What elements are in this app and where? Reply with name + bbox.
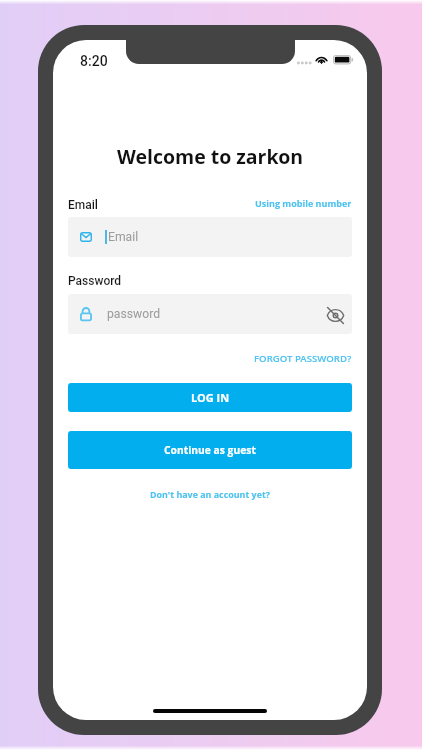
staticText: Email (108, 230, 139, 244)
staticText: 8:20 (80, 53, 108, 69)
button[interactable]: Don't have an account yet? (150, 488, 271, 500)
button[interactable]: Continue as guest (68, 431, 352, 469)
staticText: Welcome to zarkon (53, 143, 367, 170)
staticText: FORGOT PASSWORD? (254, 352, 352, 365)
button[interactable]: LOG IN (68, 383, 352, 412)
staticText: LOG IN (191, 390, 230, 405)
staticText: Don't have an account yet? (150, 488, 271, 500)
button[interactable]: Using mobile number (255, 197, 352, 209)
button[interactable]: Email (68, 217, 352, 257)
button[interactable]: FORGOT PASSWORD? (254, 352, 352, 365)
staticText: password (107, 307, 161, 321)
staticText: Continue as guest (164, 443, 256, 457)
button[interactable]: password (68, 294, 352, 334)
staticText: Password (68, 274, 122, 288)
staticText: Using mobile number (255, 197, 352, 209)
staticText: Email (68, 198, 98, 212)
button[interactable]: Show password (319, 299, 349, 329)
